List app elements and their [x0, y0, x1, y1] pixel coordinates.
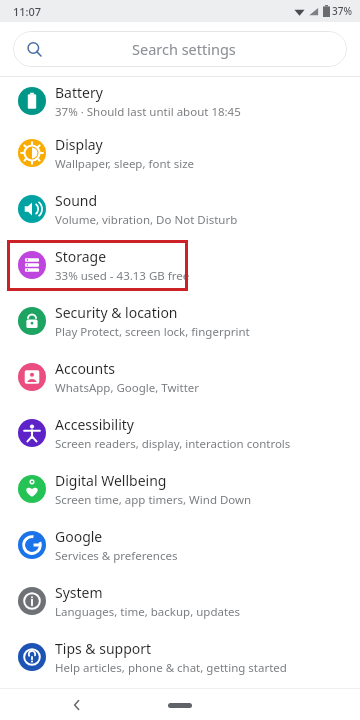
button[interactable]: Home: [160, 693, 200, 717]
button[interactable]: Digital Wellbeing: [0, 461, 360, 517]
staticText: Volume, vibration, Do Not Disturb: [55, 212, 238, 228]
staticText: 37%: [332, 4, 352, 18]
button[interactable]: Battery: [0, 77, 360, 125]
button[interactable]: Security & location: [0, 293, 360, 349]
button[interactable]: System: [0, 573, 360, 629]
staticText: Security & location: [55, 303, 178, 322]
other: Search: [26, 41, 43, 58]
button[interactable]: Tips & support: [0, 629, 360, 685]
staticText: System: [55, 583, 103, 602]
staticText: Accessibility: [55, 415, 134, 434]
button[interactable]: Search: [13, 31, 347, 67]
button[interactable]: Display: [0, 125, 360, 181]
staticText: 11:07: [13, 4, 42, 19]
button[interactable]: Accounts: [0, 349, 360, 405]
staticText: Search settings: [132, 39, 236, 59]
button[interactable]: Sound: [0, 181, 360, 237]
staticText: Services & preferences: [55, 548, 178, 564]
button[interactable]: Accessibility: [0, 405, 360, 461]
staticText: Help articles, phone & chat, getting sta…: [55, 660, 287, 676]
staticText: 37% · Should last until about 18:45: [55, 104, 241, 120]
staticText: Play Protect, screen lock, fingerprint: [55, 324, 250, 340]
staticText: Accounts: [55, 359, 115, 378]
staticText: Screen time, app timers, Wind Down: [55, 492, 252, 508]
staticText: Sound: [55, 191, 98, 210]
staticText: Languages, time, backup, updates: [55, 604, 241, 620]
staticText: 33% used - 43.13 GB free: [55, 268, 190, 284]
staticText: Battery: [55, 83, 103, 102]
button[interactable]: Back: [63, 691, 91, 719]
staticText: Google: [55, 527, 103, 546]
button[interactable]: Google: [0, 517, 360, 573]
staticText: Digital Wellbeing: [55, 471, 167, 490]
button[interactable]: Storage: [0, 237, 360, 293]
staticText: Screen readers, display, interaction con…: [55, 436, 291, 452]
staticText: Wallpaper, sleep, font size: [55, 156, 195, 172]
staticText: Storage: [55, 247, 107, 266]
staticText: WhatsApp, Google, Twitter: [55, 380, 200, 396]
staticText: Tips & support: [55, 639, 152, 658]
staticText: Display: [55, 135, 103, 154]
